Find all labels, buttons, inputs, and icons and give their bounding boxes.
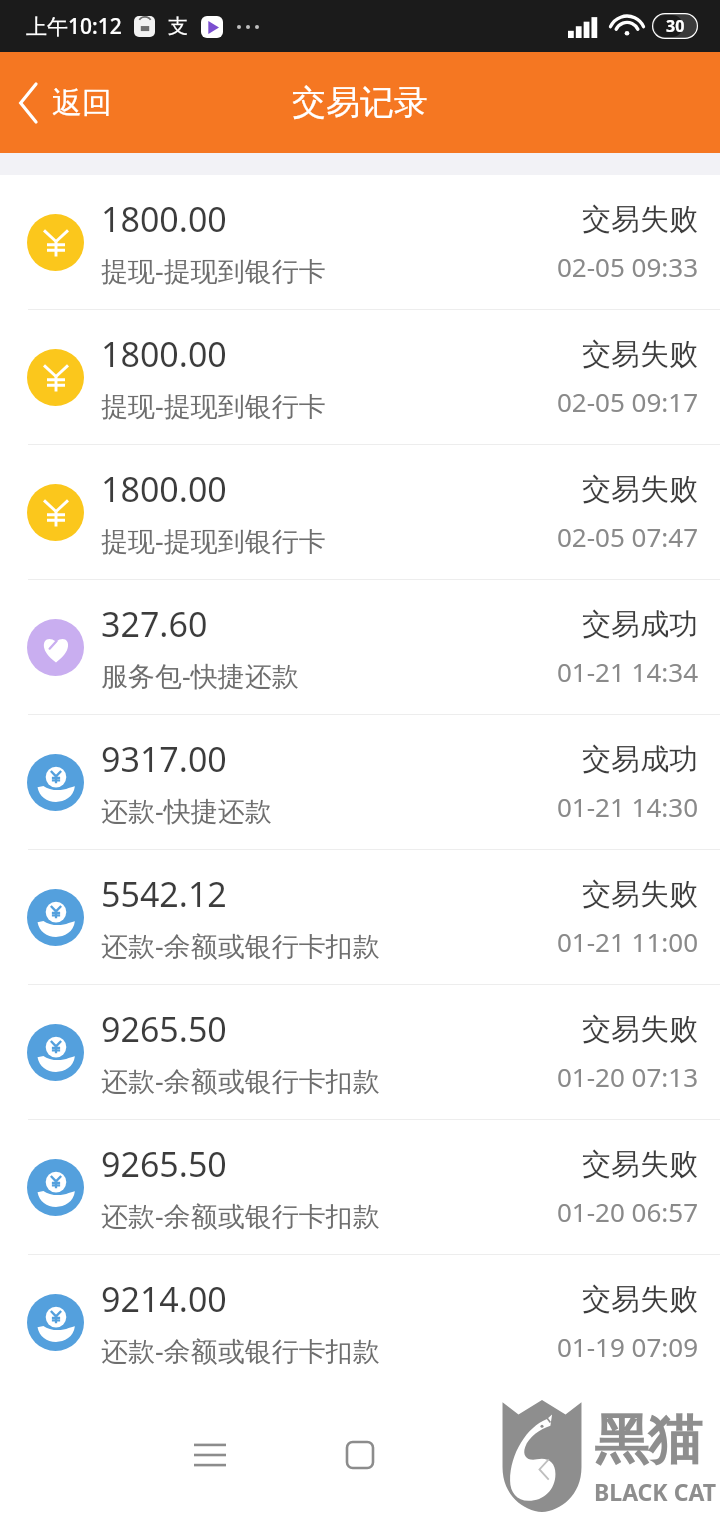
staticText: 9214.00 [101, 1276, 227, 1322]
staticText: 服务包-快捷还款 [101, 657, 299, 694]
staticText: 还款-余额或银行卡扣款 [101, 927, 380, 964]
staticText: 1800.00 [101, 331, 227, 377]
staticText: 支 [168, 14, 188, 39]
staticText: 返回 [52, 84, 112, 122]
staticText: BLACK CAT [594, 1476, 716, 1507]
staticText: 交易失败 [582, 1281, 698, 1318]
staticText: 交易失败 [582, 471, 698, 508]
staticText: 01-19 07:09 [556, 1329, 698, 1364]
button[interactable]: 5542.12 [0, 850, 720, 984]
staticText: 提现-提现到银行卡 [101, 522, 326, 559]
staticText: 交易成功 [582, 606, 698, 643]
staticText: 9265.50 [101, 1141, 227, 1187]
button[interactable]: 1800.00 [0, 445, 720, 579]
staticText: 9265.50 [101, 1006, 227, 1052]
staticText: 提现-提现到银行卡 [101, 387, 326, 424]
staticText: 交易失败 [582, 336, 698, 373]
button[interactable]: 9214.00 [0, 1255, 720, 1389]
staticText: 还款-余额或银行卡扣款 [101, 1062, 380, 1099]
staticText: 交易失败 [582, 876, 698, 913]
staticText: 1800.00 [101, 466, 227, 512]
staticText: 01-20 07:13 [556, 1059, 698, 1094]
staticText: 30 [666, 15, 685, 37]
staticText: 01-20 06:57 [556, 1194, 698, 1229]
staticText: 交易失败 [582, 201, 698, 238]
staticText: 02-05 09:33 [556, 249, 698, 284]
button[interactable]: 9317.00 [0, 715, 720, 849]
staticText: 还款-余额或银行卡扣款 [101, 1197, 380, 1234]
button[interactable]: 返回 [0, 74, 130, 132]
staticText: 交易失败 [582, 1146, 698, 1183]
staticText: 还款-余额或银行卡扣款 [101, 1332, 380, 1369]
staticText: 交易失败 [582, 1011, 698, 1048]
button[interactable]: Recent apps [172, 1417, 248, 1493]
staticText: 01-21 14:30 [556, 789, 698, 824]
button[interactable]: 1800.00 [0, 310, 720, 444]
button[interactable]: 1800.00 [0, 175, 720, 309]
staticText: 02-05 09:17 [556, 384, 698, 419]
staticText: 01-21 11:00 [556, 924, 698, 959]
button[interactable]: Home [322, 1417, 398, 1493]
staticText: 5542.12 [101, 871, 227, 917]
staticText: 01-21 14:34 [556, 654, 698, 689]
button[interactable]: 9265.50 [0, 1120, 720, 1254]
staticText: 9317.00 [101, 736, 227, 782]
staticText: 还款-快捷还款 [101, 792, 272, 829]
staticText: 交易记录 [292, 81, 428, 124]
staticText: 交易成功 [582, 741, 698, 778]
staticText: 黑猫 [594, 1406, 702, 1474]
staticText: 1800.00 [101, 196, 227, 242]
staticText: 02-05 07:47 [556, 519, 698, 554]
staticText: 327.60 [101, 601, 208, 647]
button[interactable]: 9265.50 [0, 985, 720, 1119]
staticText: 提现-提现到银行卡 [101, 252, 326, 289]
staticText: 上午10:12 [26, 12, 122, 41]
button[interactable]: 327.60 [0, 580, 720, 714]
